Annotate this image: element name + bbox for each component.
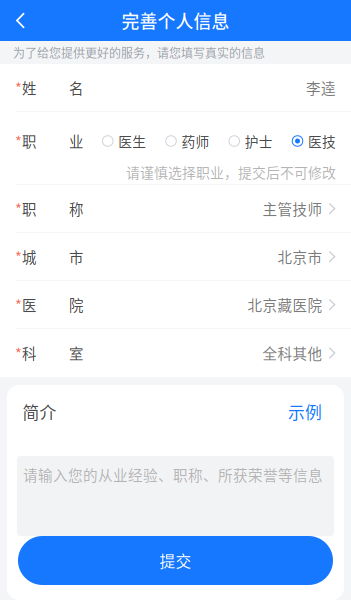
staticText: * <box>15 294 22 315</box>
staticText: 职 <box>22 198 36 219</box>
staticText: 市 <box>69 246 83 267</box>
staticText: 主管技师 <box>262 198 322 219</box>
button[interactable]: * <box>0 185 351 233</box>
button[interactable]: 医技 <box>292 131 336 151</box>
button[interactable]: 医生 <box>102 131 146 151</box>
button[interactable]: 返回 <box>0 0 41 41</box>
staticText: 室 <box>69 343 83 363</box>
staticText: 医生 <box>118 131 146 151</box>
staticText: 医技 <box>308 131 336 151</box>
button[interactable]: * <box>0 329 351 377</box>
staticText: 北京藏医院 <box>247 294 322 315</box>
staticText: * <box>15 77 22 98</box>
staticText: 名 <box>69 77 83 98</box>
staticText: * <box>15 130 22 152</box>
button[interactable]: 药师 <box>165 131 209 151</box>
staticText: 称 <box>69 198 83 219</box>
staticText: 姓 <box>22 77 36 98</box>
staticText: 完善个人信息 <box>121 8 229 33</box>
staticText: 业 <box>69 131 83 151</box>
staticText: 职 <box>22 131 36 151</box>
staticText: 科 <box>22 343 36 363</box>
staticText: 请输入您的从业经验、职称、所获荣誉等信息 <box>23 464 323 485</box>
button[interactable]: 请输入您的从业经验、职称、所获荣誉等信息 <box>17 456 334 536</box>
staticText: 医 <box>22 294 36 315</box>
button[interactable]: 护士 <box>229 131 273 151</box>
staticText: 提交 <box>159 549 191 572</box>
staticText: 李逵 <box>306 77 336 98</box>
button[interactable]: 示例 <box>288 399 322 424</box>
staticText: * <box>15 342 22 364</box>
staticText: * <box>15 246 22 267</box>
button[interactable]: * <box>0 233 351 281</box>
staticText: 全科其他 <box>262 342 322 363</box>
staticText: 请谨慎选择职业，提交后不可修改 <box>126 162 336 182</box>
staticText: 北京市 <box>277 246 322 267</box>
button[interactable]: 提交 <box>18 536 333 585</box>
staticText: 城 <box>22 246 36 267</box>
staticText: 药师 <box>181 131 209 151</box>
staticText: 简介 <box>22 399 56 424</box>
staticText: 示例 <box>288 399 322 424</box>
button[interactable]: * <box>0 281 351 329</box>
staticText: 护士 <box>245 131 273 151</box>
staticText: 院 <box>69 294 83 315</box>
staticText: 为了给您提供更好的服务，请您填写真实的信息 <box>13 44 265 61</box>
staticText: * <box>15 198 22 219</box>
